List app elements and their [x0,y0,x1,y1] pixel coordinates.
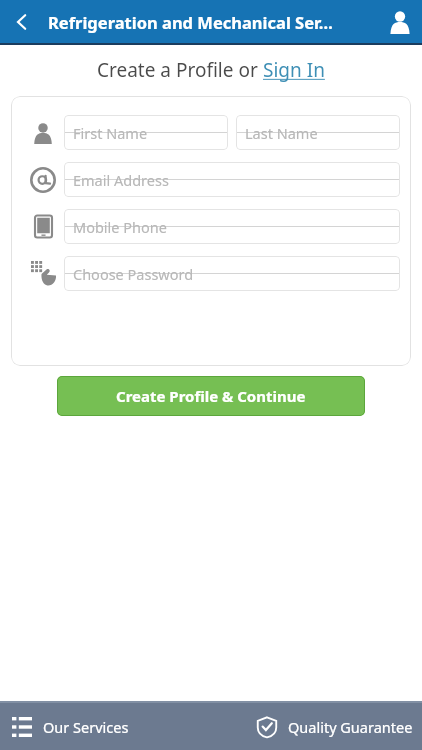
staticText: Mobile Phone [73,217,167,237]
staticText: Our Services [43,717,129,737]
button[interactable]: Choose Password [64,256,400,291]
button[interactable]: First Name [64,115,228,150]
button[interactable]: Sign In [263,57,325,83]
staticText: Create a Profile or [97,57,263,83]
staticText: Choose Password [73,264,194,284]
staticText: Last Name [245,123,318,143]
button[interactable]: Create Profile & Continue [57,376,365,416]
button[interactable]: Quality Guarantee [256,716,422,738]
staticText: Email Address [73,170,169,190]
button[interactable]: Account [378,0,422,43]
button[interactable]: Email Address [64,162,400,197]
staticText: Refrigeration and Mechanical Ser… [48,11,333,33]
staticText: Quality Guarantee [288,717,413,737]
staticText: First Name [73,123,148,143]
button[interactable]: Last Name [236,115,400,150]
staticText: Create Profile & Continue [116,386,306,406]
button[interactable]: Our Services [0,703,256,750]
staticText: Sign In [263,57,325,83]
button[interactable]: Mobile Phone [64,209,400,244]
button[interactable]: Back [0,0,44,43]
